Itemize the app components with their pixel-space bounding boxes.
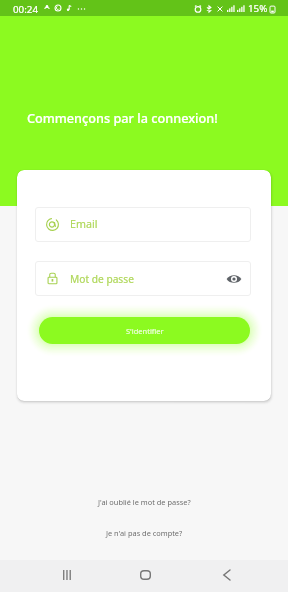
button[interactable]: Home: [125, 560, 165, 590]
staticText: 15%: [248, 2, 268, 15]
button[interactable]: Email: [35, 207, 251, 242]
staticText: Je n'ai pas de compte?: [106, 528, 183, 538]
button[interactable]: J'ai oublié le mot de passe?: [90, 494, 199, 510]
staticText: Commençons par la connexion!: [27, 109, 218, 126]
staticText: 00:24: [13, 3, 39, 16]
staticText: S'identifier: [126, 326, 164, 336]
button[interactable]: Recents: [46, 560, 86, 590]
staticText: J'ai oublié le mot de passe?: [98, 497, 191, 507]
staticText: Mot de passe: [70, 272, 134, 286]
button[interactable]: S'identifier: [39, 317, 250, 344]
button[interactable]: Show password: [225, 270, 243, 288]
button[interactable]: Je n'ai pas de compte?: [98, 525, 191, 541]
button[interactable]: Mot de passe: [35, 261, 251, 296]
button[interactable]: Back: [206, 560, 246, 590]
staticText: Email: [70, 217, 98, 232]
